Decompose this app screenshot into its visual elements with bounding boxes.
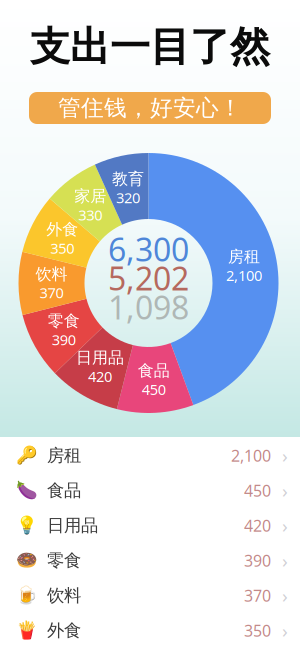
staticText: 房租 xyxy=(228,247,260,267)
staticText: › xyxy=(282,548,288,573)
staticText: 370 xyxy=(244,585,271,606)
staticText: 350 xyxy=(244,620,271,641)
staticText: 420 xyxy=(244,515,271,536)
staticText: 教育 xyxy=(112,169,144,189)
staticText: 1,098 xyxy=(108,286,189,328)
staticText: 🍺 xyxy=(16,586,38,605)
staticText: 2,100 xyxy=(231,445,271,466)
staticText: 330 xyxy=(78,205,102,224)
staticText: 日用品 xyxy=(76,348,124,368)
staticText: 🍟 xyxy=(16,621,38,640)
button[interactable]: 管住钱，好安心！ xyxy=(29,92,271,124)
staticText: › xyxy=(282,443,288,468)
staticText: › xyxy=(282,478,288,503)
staticText: 管住钱，好安心！ xyxy=(58,94,242,122)
staticText: 6,300 xyxy=(108,228,189,270)
staticText: 食品 xyxy=(138,361,170,380)
staticText: 450 xyxy=(142,379,166,399)
staticText: 💡 xyxy=(16,516,38,535)
staticText: 外食 xyxy=(47,620,81,641)
staticText: 🍩 xyxy=(16,551,38,570)
button[interactable]: 💡 xyxy=(0,508,300,543)
staticText: 饮料 xyxy=(35,264,67,284)
staticText: 320 xyxy=(116,188,140,207)
button[interactable]: 🔑 xyxy=(0,438,300,473)
staticText: › xyxy=(282,513,288,538)
staticText: 食品 xyxy=(47,480,81,501)
staticText: 房租 xyxy=(47,445,81,466)
button[interactable]: 🍆 xyxy=(0,473,300,508)
button[interactable]: 🍺 xyxy=(0,578,300,613)
staticText: 饮料 xyxy=(47,585,81,606)
staticText: 350 xyxy=(50,238,74,258)
button[interactable]: 🍟 xyxy=(0,613,300,648)
staticText: 外食 xyxy=(46,220,78,239)
staticText: 支出一目了然 xyxy=(30,22,270,71)
staticText: 家居 xyxy=(74,186,106,206)
staticText: 🔑 xyxy=(16,446,38,465)
staticText: › xyxy=(282,618,288,643)
staticText: 450 xyxy=(244,480,271,501)
staticText: 日用品 xyxy=(47,515,98,536)
button[interactable]: 🍩 xyxy=(0,543,300,578)
staticText: 420 xyxy=(88,366,112,386)
staticText: 390 xyxy=(244,550,271,571)
staticText: 5,202 xyxy=(108,257,189,299)
staticText: › xyxy=(282,583,288,608)
staticText: 零食 xyxy=(47,550,81,571)
staticText: 零食 xyxy=(48,311,80,331)
staticText: 🍆 xyxy=(16,481,38,500)
staticText: 390 xyxy=(52,330,76,349)
staticText: 370 xyxy=(39,283,63,302)
staticText: 2,100 xyxy=(226,266,262,285)
